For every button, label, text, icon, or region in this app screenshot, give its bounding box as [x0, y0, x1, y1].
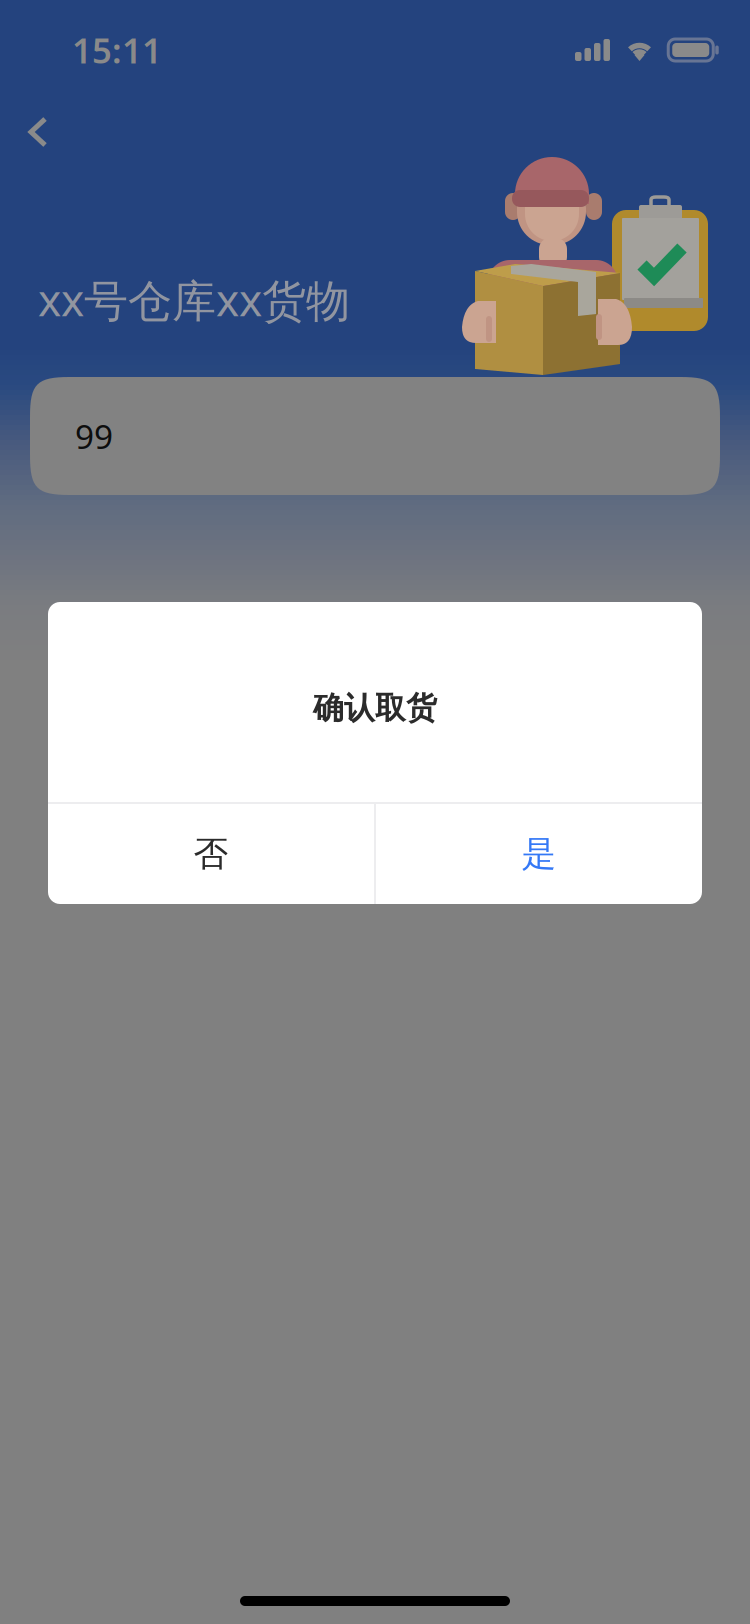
staticText: 99	[75, 414, 113, 458]
button[interactable]: Back	[6, 100, 70, 164]
staticText: 是	[521, 833, 556, 875]
staticText: 15:11	[72, 27, 162, 73]
button[interactable]: 是	[376, 804, 702, 904]
staticText: 确认取货	[313, 689, 437, 727]
staticText: 否	[193, 833, 228, 875]
staticText: xx号仓库xx货物	[38, 270, 350, 329]
button[interactable]: 否	[48, 804, 374, 904]
button[interactable]: 99	[30, 377, 720, 495]
